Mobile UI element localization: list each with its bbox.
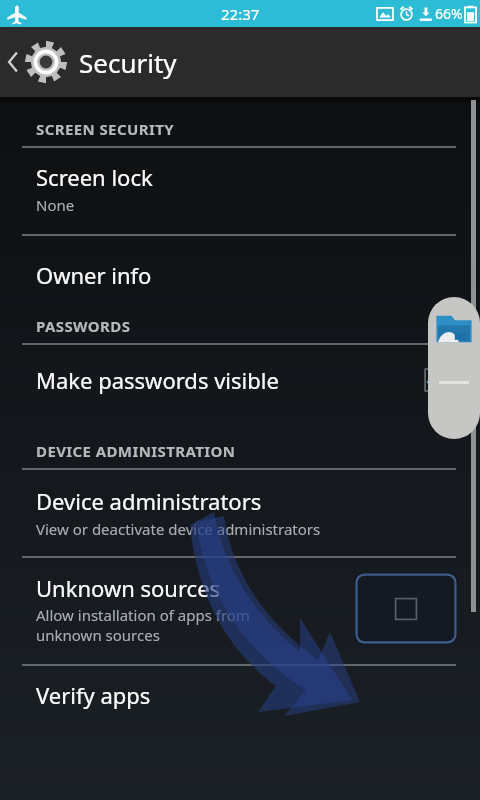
button[interactable]: Unknown sources toggle bbox=[354, 572, 458, 645]
button[interactable]: Make passwords visible bbox=[0, 345, 480, 415]
staticText: Make passwords visible bbox=[36, 365, 422, 395]
staticText: Screen lock bbox=[36, 162, 153, 192]
staticText: PASSWORDS bbox=[36, 316, 131, 336]
button[interactable]: ES File Explorer floating window bbox=[428, 297, 480, 439]
staticText: None bbox=[36, 195, 75, 215]
staticText: Security bbox=[79, 45, 177, 80]
button[interactable]: Unknown sources bbox=[0, 558, 480, 657]
staticText: DEVICE ADMINISTRATION bbox=[36, 441, 236, 461]
button[interactable]: Screen lock bbox=[0, 148, 480, 227]
staticText: Device administrators bbox=[36, 486, 262, 516]
button[interactable]: Device administrators bbox=[0, 470, 480, 549]
staticText: SCREEN SECURITY bbox=[36, 119, 174, 139]
button[interactable]: Back to Settings bbox=[0, 27, 480, 97]
button[interactable]: Owner info bbox=[0, 236, 480, 308]
staticText: Verify apps bbox=[36, 680, 151, 710]
staticText: View or deactivate device administrators bbox=[36, 519, 321, 539]
staticText: Owner info bbox=[36, 260, 152, 290]
button[interactable]: Verify apps bbox=[0, 666, 480, 720]
staticText: 22:37 bbox=[221, 4, 260, 24]
staticText: Unknown sources bbox=[36, 573, 221, 603]
staticText: 66% bbox=[435, 4, 463, 23]
staticText: Allow installation of apps from unknown … bbox=[36, 605, 250, 645]
